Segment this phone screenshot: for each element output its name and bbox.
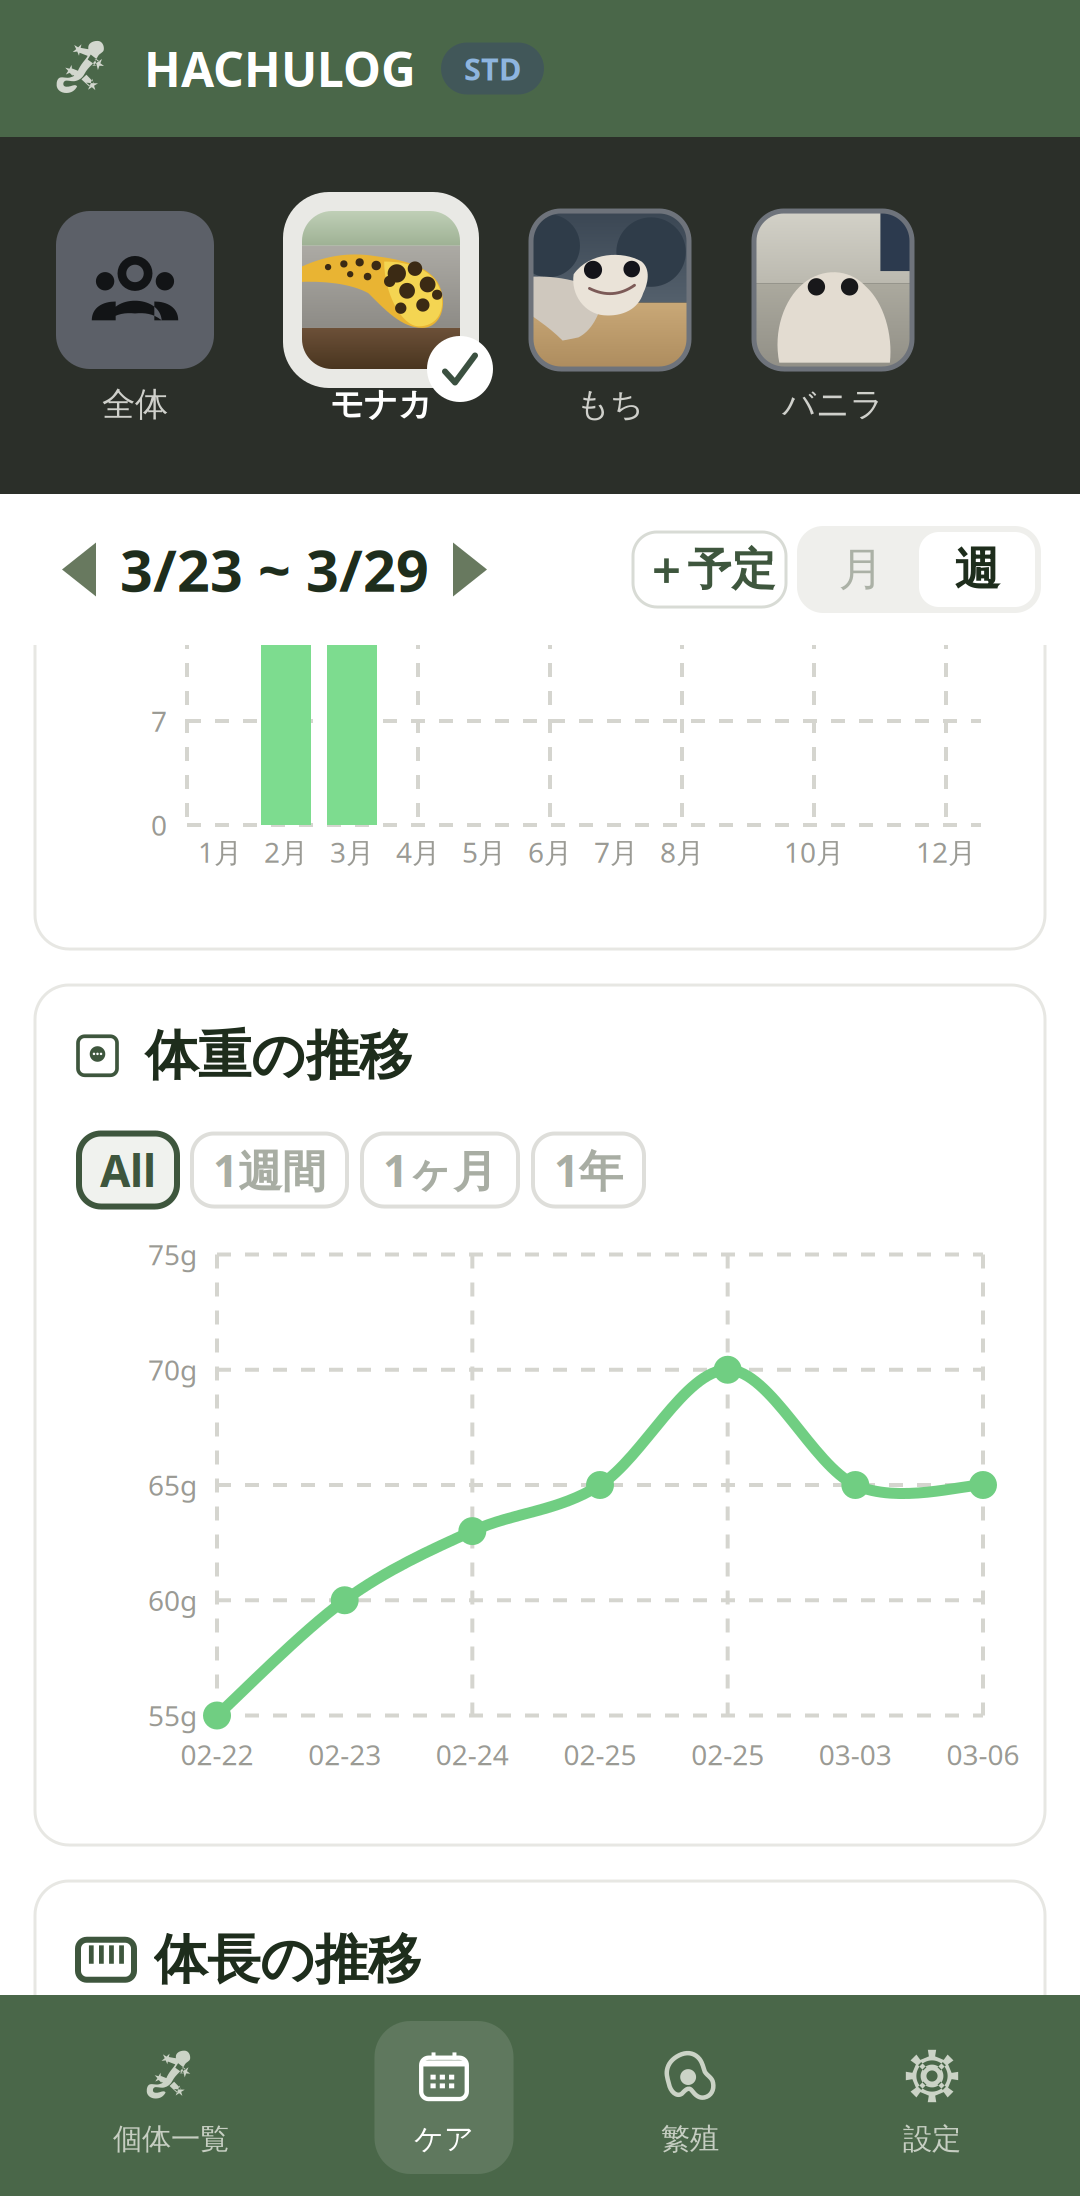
button[interactable]: もち bbox=[500, 196, 720, 425]
button[interactable]: STD bbox=[441, 42, 544, 94]
staticText: 70g bbox=[148, 1351, 197, 1388]
button[interactable]: 週 bbox=[919, 532, 1035, 607]
staticText: 12月 bbox=[916, 833, 976, 871]
button[interactable]: モナカ bbox=[271, 196, 491, 425]
staticText: 週 bbox=[954, 542, 999, 597]
button[interactable]: 前の週 bbox=[48, 512, 110, 626]
staticText: 全体 bbox=[102, 384, 168, 425]
staticText: ＋予定 bbox=[643, 542, 775, 596]
staticText: 02-24 bbox=[436, 1736, 509, 1773]
button[interactable]: ケア bbox=[374, 2021, 513, 2174]
staticText: 2月 bbox=[264, 833, 308, 871]
staticText: 7月 bbox=[594, 833, 638, 871]
staticText: モナカ bbox=[330, 384, 432, 425]
staticText: 繁殖 bbox=[661, 2121, 719, 2157]
staticText: バニラ bbox=[782, 384, 884, 425]
button[interactable]: バニラ bbox=[723, 196, 943, 425]
staticText: もち bbox=[576, 384, 644, 425]
staticText: 02-25 bbox=[691, 1736, 764, 1773]
staticText: 4月 bbox=[396, 833, 440, 871]
staticText: 7 bbox=[151, 702, 167, 740]
staticText: All bbox=[100, 1141, 156, 1199]
staticText: 03-06 bbox=[946, 1736, 1019, 1773]
staticText: 3月 bbox=[330, 833, 374, 871]
staticText: 10月 bbox=[784, 833, 844, 871]
staticText: 02-22 bbox=[180, 1736, 253, 1773]
staticText: 3/23 ~ 3/29 bbox=[120, 531, 429, 607]
button[interactable]: ＋予定 bbox=[633, 532, 786, 607]
staticText: 体長の推移 bbox=[154, 1927, 421, 1992]
staticText: 6月 bbox=[528, 833, 572, 871]
staticText: 1ヶ月 bbox=[383, 1141, 497, 1199]
staticText: 個体一覧 bbox=[113, 2121, 229, 2157]
staticText: 1年 bbox=[554, 1141, 623, 1199]
button[interactable]: 1ヶ月 bbox=[362, 1133, 518, 1206]
button[interactable]: 個体一覧 bbox=[101, 2021, 240, 2174]
button[interactable]: 1年 bbox=[533, 1133, 644, 1206]
staticText: 月 bbox=[838, 542, 883, 597]
button[interactable]: All bbox=[79, 1133, 177, 1206]
button[interactable]: 次の週 bbox=[439, 512, 501, 626]
button[interactable]: 繁殖 bbox=[620, 2021, 759, 2174]
staticText: 55g bbox=[148, 1697, 197, 1734]
button[interactable]: 1週間 bbox=[192, 1133, 347, 1206]
button[interactable]: 設定 bbox=[862, 2021, 1001, 2174]
button[interactable]: 月 bbox=[803, 532, 919, 607]
staticText: 75g bbox=[148, 1236, 197, 1273]
staticText: 1週間 bbox=[213, 1141, 326, 1199]
staticText: 5月 bbox=[462, 833, 506, 871]
staticText: 設定 bbox=[903, 2121, 961, 2157]
staticText: STD bbox=[464, 48, 521, 89]
button[interactable]: 全体 bbox=[25, 196, 245, 425]
staticText: 03-03 bbox=[819, 1736, 892, 1773]
staticText: 02-23 bbox=[308, 1736, 381, 1773]
staticText: 02-25 bbox=[563, 1736, 636, 1773]
staticText: 1月 bbox=[198, 833, 242, 871]
staticText: ケア bbox=[414, 2121, 474, 2157]
staticText: 60g bbox=[148, 1582, 197, 1619]
staticText: 体重の推移 bbox=[145, 1023, 412, 1088]
staticText: 8月 bbox=[660, 833, 704, 871]
staticText: 65g bbox=[148, 1466, 197, 1504]
staticText: 0 bbox=[151, 806, 167, 844]
staticText: HACHULOG bbox=[144, 37, 416, 100]
